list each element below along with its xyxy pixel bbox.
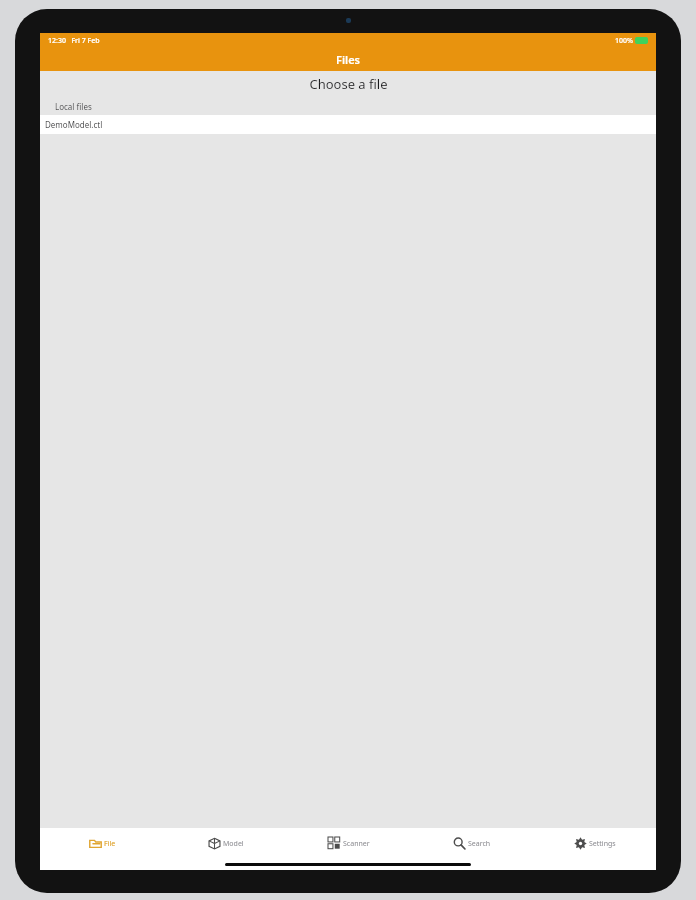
staticText: Settings (589, 839, 616, 849)
staticText: File (104, 839, 116, 849)
button[interactable]: Files (40, 48, 656, 71)
staticText: 12:30 Fri 7 Feb (48, 36, 100, 46)
button[interactable]: Model (164, 828, 287, 859)
staticText: Model (223, 839, 244, 849)
staticText: Local files (55, 101, 92, 112)
staticText: Scanner (343, 839, 370, 849)
staticText: Search (468, 839, 491, 849)
button[interactable]: Scanner (287, 828, 410, 859)
button[interactable]: Settings (533, 828, 656, 859)
staticText: DemoModel.ctl (45, 119, 103, 130)
button[interactable]: DemoModel.ctl (40, 115, 656, 134)
button[interactable]: Search (410, 828, 533, 859)
staticText: Choose a file (309, 75, 388, 93)
staticText: 100% (615, 36, 633, 46)
button[interactable]: File (40, 828, 164, 859)
staticText: Files (336, 52, 361, 67)
